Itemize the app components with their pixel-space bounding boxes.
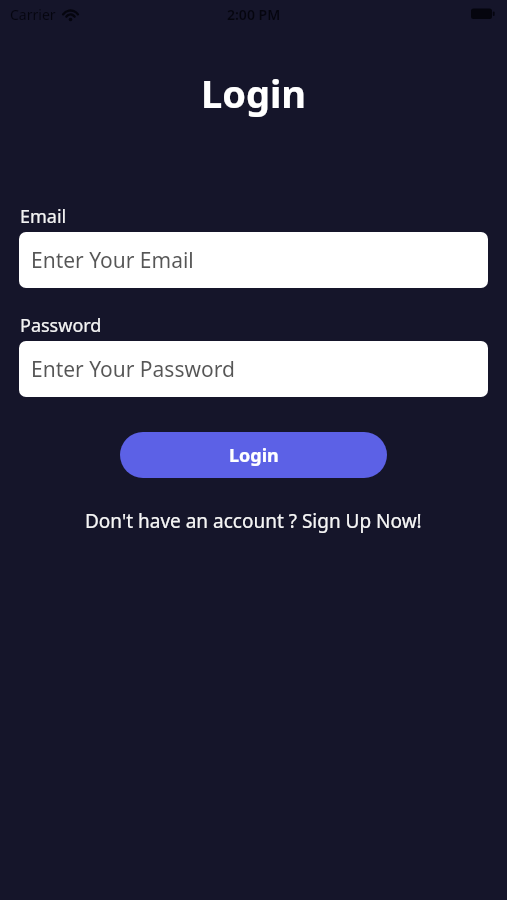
button[interactable]: Don't have an account ? Sign Up Now! — [85, 508, 422, 534]
staticText: Email — [20, 204, 507, 229]
staticText: Password — [20, 313, 507, 338]
button[interactable]: Enter Your Email — [19, 232, 488, 288]
staticText: Login — [201, 67, 307, 119]
staticText: 2:00 PM — [227, 5, 281, 24]
button[interactable]: Enter Your Password — [19, 341, 488, 397]
staticText: Carrier — [10, 5, 56, 24]
staticText: Login — [229, 443, 279, 468]
button[interactable]: Login — [120, 432, 387, 478]
staticText: Enter Your Email — [31, 246, 194, 275]
staticText: Enter Your Password — [31, 355, 235, 384]
